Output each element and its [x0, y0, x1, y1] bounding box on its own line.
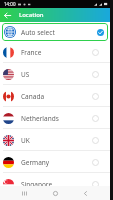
- staticText: UK: [21, 136, 30, 145]
- button[interactable]: US: [0, 63, 113, 85]
- button[interactable]: France: [0, 41, 113, 63]
- staticText: 14:00: [4, 1, 16, 7]
- staticText: Netherlands: [21, 114, 59, 123]
- staticText: US: [21, 70, 30, 79]
- button[interactable]: Canada: [0, 85, 113, 107]
- button[interactable]: Singapore: [0, 173, 113, 186]
- button[interactable]: UK: [0, 129, 113, 151]
- staticText: Canada: [21, 92, 45, 101]
- staticText: Singapore: [21, 180, 53, 186]
- button[interactable]: Auto select: [2, 23, 108, 41]
- staticText: France: [21, 48, 42, 57]
- button[interactable]: Germany: [0, 151, 113, 173]
- button[interactable]: Back: [1, 9, 14, 22]
- staticText: Location: [19, 11, 44, 19]
- button[interactable]: Back: [80, 188, 91, 199]
- button[interactable]: Netherlands: [0, 107, 113, 129]
- staticText: Germany: [21, 158, 50, 167]
- button[interactable]: Home: [50, 188, 61, 199]
- button[interactable]: Recent apps: [19, 188, 30, 199]
- staticText: Auto select: [21, 28, 55, 37]
